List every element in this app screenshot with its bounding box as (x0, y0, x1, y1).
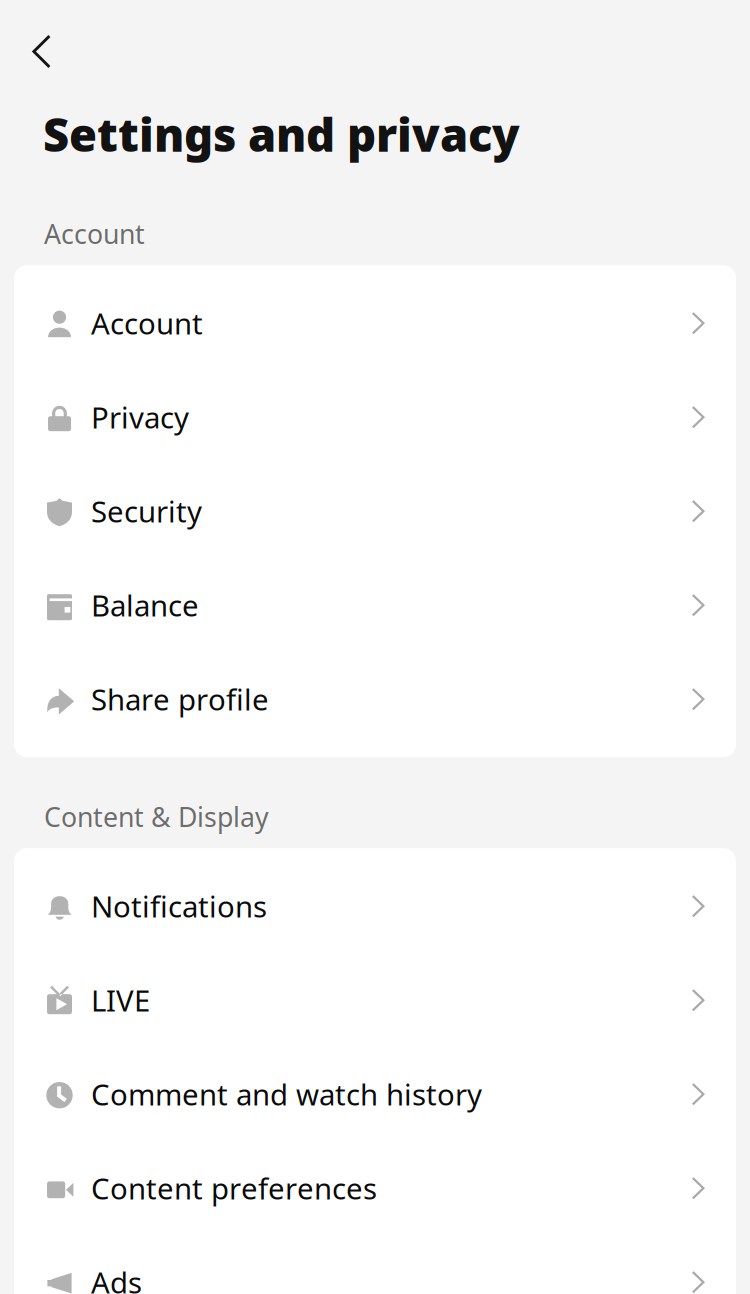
staticText: Comment and watch history (91, 1075, 482, 1114)
button[interactable]: Privacy (14, 370, 736, 464)
button[interactable]: Comment and watch history (14, 1047, 736, 1141)
staticText: Ads (91, 1263, 142, 1294)
staticText: Content preferences (91, 1169, 377, 1208)
button[interactable]: Notifications (14, 859, 736, 953)
button[interactable]: Account (14, 276, 736, 370)
staticText: Settings and privacy (43, 104, 520, 164)
button[interactable]: Back (0, 0, 120, 68)
button[interactable]: Ads (14, 1235, 736, 1294)
staticText: Account (44, 216, 145, 251)
staticText: Balance (91, 586, 199, 625)
staticText: Share profile (91, 680, 269, 719)
staticText: Notifications (91, 887, 267, 926)
button[interactable]: Balance (14, 558, 736, 652)
button[interactable]: Share profile (14, 652, 736, 746)
staticText: Security (91, 492, 202, 531)
staticText: Content & Display (44, 799, 269, 834)
button[interactable]: Security (14, 464, 736, 558)
button[interactable]: LIVE (14, 953, 736, 1047)
staticText: Account (91, 304, 203, 343)
staticText: LIVE (91, 981, 150, 1020)
button[interactable]: Content preferences (14, 1141, 736, 1235)
staticText: Privacy (91, 398, 189, 437)
